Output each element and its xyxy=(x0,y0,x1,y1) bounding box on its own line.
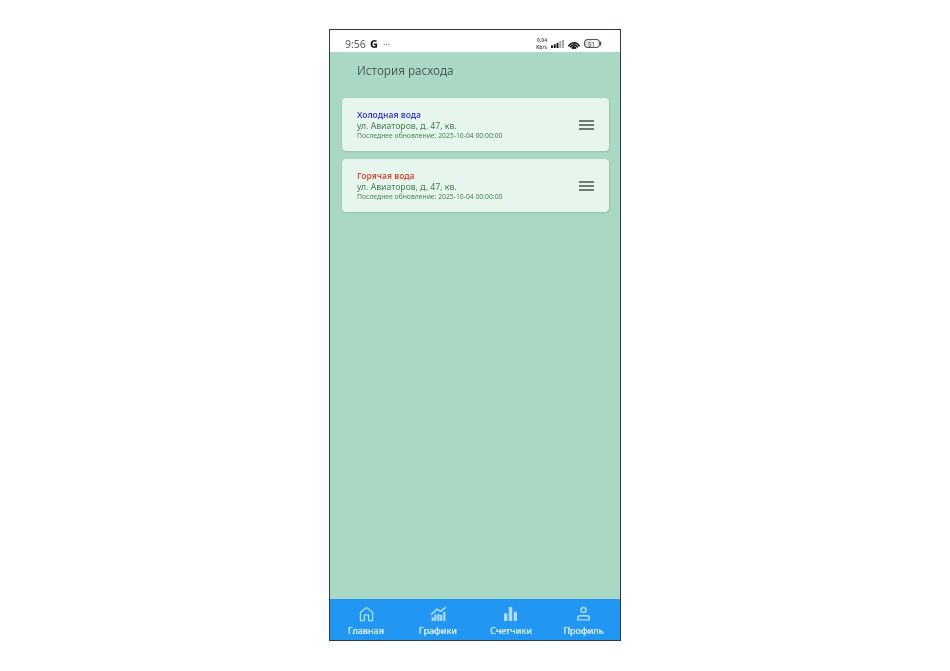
staticText: Счетчики xyxy=(490,624,532,636)
button[interactable]: Счетчики xyxy=(474,607,547,640)
staticText: 9:56 xyxy=(345,37,366,51)
staticText: Главная xyxy=(348,624,384,636)
staticText: 0.04 xyxy=(537,37,547,44)
staticText: Профиль xyxy=(563,624,604,636)
staticText: ул. Авиаторов, д. 47, кв. xyxy=(357,181,457,193)
button[interactable]: Холодная вода xyxy=(342,98,609,151)
staticText: Холодная вода xyxy=(357,109,422,121)
staticText: ул. Авиаторов, д. 47, кв. xyxy=(357,120,457,132)
staticText: ··· xyxy=(383,38,391,50)
button[interactable]: Меню xyxy=(575,114,597,136)
staticText: Последнее обновление: 2025-10-04 00:00:0… xyxy=(357,131,503,140)
button[interactable]: Профиль xyxy=(547,607,620,640)
staticText: Kb/s xyxy=(536,44,548,51)
staticText: Графики xyxy=(419,624,457,636)
staticText: История расхода xyxy=(357,62,454,78)
button[interactable]: Горячая вода xyxy=(342,159,609,212)
staticText: Горячая вода xyxy=(357,170,415,182)
button[interactable]: Меню xyxy=(575,175,597,197)
staticText: G xyxy=(370,37,378,51)
button[interactable]: Графики xyxy=(402,607,474,640)
staticText: 51 xyxy=(588,40,596,48)
staticText: Последнее обновление: 2025-10-04 00:00:0… xyxy=(357,192,503,201)
button[interactable]: Главная xyxy=(330,607,402,640)
